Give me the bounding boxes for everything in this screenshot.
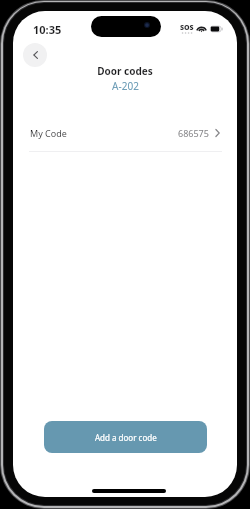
staticText: SOS xyxy=(180,23,194,33)
button[interactable]: Back xyxy=(23,43,47,67)
staticText: Door codes xyxy=(97,64,153,78)
staticText: Add a door code xyxy=(95,432,157,443)
staticText: A-202 xyxy=(112,79,139,93)
staticText: 686575 xyxy=(178,127,209,139)
button[interactable]: Add a door code xyxy=(44,421,207,453)
staticText: My Code xyxy=(30,127,67,139)
staticText: 10:35 xyxy=(33,22,62,37)
button[interactable]: My Code xyxy=(13,114,237,152)
